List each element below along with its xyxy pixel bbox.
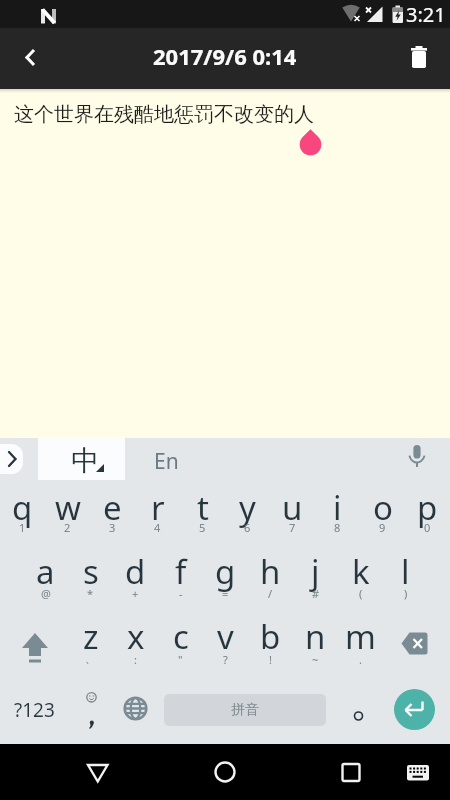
staticText: t — [197, 485, 209, 530]
button[interactable]: m — [338, 612, 383, 678]
button[interactable]: n — [293, 612, 338, 678]
button[interactable]: b — [248, 612, 293, 678]
staticText: g — [215, 549, 236, 594]
staticText: @ — [41, 586, 51, 601]
button[interactable] — [326, 748, 374, 796]
staticText: i — [333, 485, 342, 530]
button[interactable]: e — [90, 480, 135, 546]
staticText: * — [87, 586, 94, 601]
staticText: h — [260, 549, 281, 594]
staticText: k — [352, 549, 370, 594]
staticText: q — [12, 485, 33, 530]
staticText: 1 — [19, 520, 26, 535]
button[interactable]: p — [405, 480, 450, 546]
staticText: w — [55, 485, 81, 530]
button[interactable]: x — [113, 612, 158, 678]
staticText: 2 — [64, 520, 71, 535]
button[interactable] — [0, 35, 48, 83]
staticText: j — [311, 549, 320, 594]
staticText: d — [125, 549, 146, 594]
staticText: 3 — [109, 520, 116, 535]
button[interactable]: 这个世界在残酷地惩罚不改变的人 — [14, 102, 314, 127]
button[interactable]: y — [225, 480, 270, 546]
button[interactable] — [394, 689, 435, 730]
staticText: 6 — [244, 520, 251, 535]
staticText: 0 — [424, 520, 431, 535]
button[interactable]: f — [158, 546, 203, 612]
button[interactable]: q — [0, 480, 45, 546]
staticText: a — [36, 549, 55, 594]
staticText: ~ — [312, 652, 319, 667]
button[interactable] — [113, 678, 158, 744]
button[interactable]: h — [248, 546, 293, 612]
button[interactable]: g — [203, 546, 248, 612]
staticText: p — [417, 485, 438, 530]
staticText: ( — [359, 586, 363, 601]
button[interactable]: a — [23, 546, 68, 612]
staticText: : — [134, 652, 137, 667]
staticText: 4 — [154, 520, 161, 535]
staticText: 8 — [334, 520, 341, 535]
button[interactable]: 拼音 — [164, 694, 326, 726]
staticText: . — [359, 652, 362, 667]
button[interactable]: v — [203, 612, 248, 678]
button[interactable] — [383, 612, 450, 678]
staticText: = — [222, 586, 229, 601]
staticText: c — [173, 614, 189, 659]
button[interactable] — [68, 678, 113, 744]
staticText: r — [151, 485, 165, 530]
staticText: n — [305, 614, 326, 659]
staticText: 5 — [199, 520, 206, 535]
staticText: l — [401, 549, 410, 594]
button[interactable] — [74, 748, 122, 796]
staticText: o — [373, 485, 393, 530]
button[interactable] — [0, 612, 68, 678]
staticText: / — [268, 586, 273, 601]
button[interactable]: u — [270, 480, 315, 546]
button[interactable]: k — [338, 546, 383, 612]
staticText: 2017/9/6 0:14 — [153, 41, 297, 71]
staticText: 拼音 — [231, 701, 259, 719]
staticText: + — [132, 586, 139, 601]
button[interactable] — [338, 678, 383, 744]
button[interactable]: t — [180, 480, 225, 546]
button[interactable] — [395, 438, 439, 480]
staticText: m — [345, 614, 376, 659]
button[interactable]: r — [135, 480, 180, 546]
button[interactable]: j — [293, 546, 338, 612]
staticText: s — [83, 549, 99, 594]
staticText: v — [217, 614, 234, 659]
button[interactable]: En — [125, 438, 212, 480]
staticText: e — [103, 485, 122, 530]
staticText: b — [260, 614, 281, 659]
button[interactable] — [402, 35, 450, 83]
staticText: - — [179, 586, 183, 601]
staticText: 3:21 — [406, 1, 446, 28]
staticText: ?123 — [14, 697, 55, 723]
staticText: En — [154, 447, 179, 476]
staticText: y — [239, 485, 256, 530]
staticText: ! — [269, 652, 272, 667]
staticText: f — [175, 549, 187, 594]
button[interactable]: ?123 — [0, 678, 68, 744]
staticText: x — [127, 614, 145, 659]
button[interactable]: z — [68, 612, 113, 678]
button[interactable]: c — [158, 612, 203, 678]
button[interactable]: s — [68, 546, 113, 612]
button[interactable]: w — [45, 480, 90, 546]
staticText: z — [83, 614, 99, 659]
staticText: 中 — [71, 443, 99, 478]
button[interactable]: l — [383, 546, 428, 612]
button[interactable]: 中 — [38, 438, 125, 480]
staticText: " — [178, 652, 183, 667]
staticText: ) — [404, 586, 408, 601]
staticText: # — [312, 586, 320, 601]
button[interactable] — [0, 444, 23, 474]
button[interactable]: i — [315, 480, 360, 546]
staticText: 9 — [379, 520, 386, 535]
staticText: ? — [223, 652, 228, 667]
button[interactable]: o — [360, 480, 405, 546]
button[interactable] — [201, 748, 249, 796]
button[interactable] — [394, 748, 442, 796]
button[interactable]: d — [113, 546, 158, 612]
